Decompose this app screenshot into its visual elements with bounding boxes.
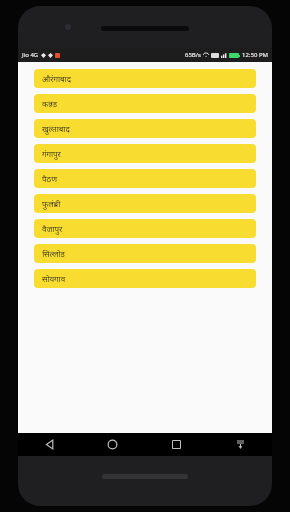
- staticText: गंगापुर: [42, 148, 61, 159]
- staticText: सोयगाव: [42, 273, 66, 284]
- button[interactable]: औरंगाबाद: [34, 69, 256, 88]
- button[interactable]: फुलंब्री: [34, 194, 256, 213]
- staticText: पैठण: [42, 173, 57, 184]
- staticText: खुल्ताबाद: [42, 123, 70, 134]
- button[interactable]: वैजापुर: [34, 219, 256, 238]
- button[interactable]: Back: [18, 433, 81, 456]
- button[interactable]: खुल्ताबाद: [34, 119, 256, 138]
- button[interactable]: Home: [81, 433, 144, 456]
- button[interactable]: कन्नड: [34, 94, 256, 113]
- staticText: औरंगाबाद: [42, 73, 71, 84]
- staticText: सिल्लोड: [42, 248, 65, 259]
- button[interactable]: पैठण: [34, 169, 256, 188]
- staticText: फुलंब्री: [42, 198, 61, 209]
- button[interactable]: सिल्लोड: [34, 244, 256, 263]
- button[interactable]: सोयगाव: [34, 269, 256, 288]
- staticText: Jio 4G: [22, 51, 39, 59]
- button[interactable]: Hide keyboard: [208, 433, 272, 456]
- button[interactable]: गंगापुर: [34, 144, 256, 163]
- staticText: 65B/s: [185, 51, 201, 59]
- staticText: वैजापुर: [42, 223, 63, 234]
- staticText: कन्नड: [42, 98, 57, 109]
- button[interactable]: Recent apps: [144, 433, 208, 456]
- staticText: 12:50 PM: [242, 51, 268, 59]
